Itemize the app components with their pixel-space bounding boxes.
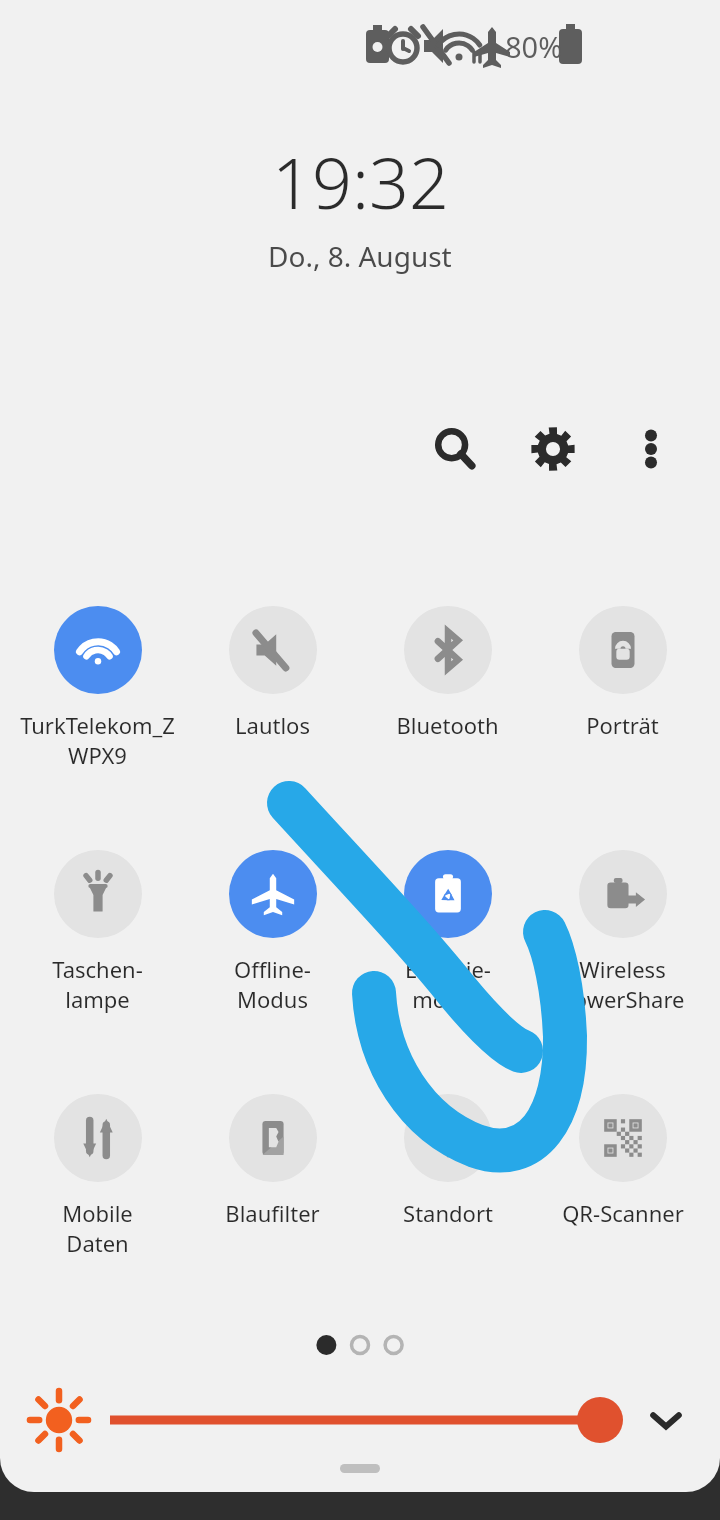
staticText: Do., 8. August	[268, 237, 452, 275]
button[interactable]: Mobile Daten	[10, 1094, 185, 1258]
staticText: TurkTelekom_Z WPX9	[20, 710, 175, 770]
button[interactable]: Standort	[360, 1094, 535, 1228]
staticText: Porträt	[586, 710, 659, 740]
button[interactable]: Wireless PowerShare	[535, 850, 710, 1014]
button[interactable]: Search	[418, 412, 492, 486]
staticText: Wireless PowerShare	[560, 954, 685, 1014]
staticText: Standort	[403, 1198, 493, 1228]
staticText: Blaufilter	[225, 1198, 320, 1228]
staticText: Offline- Modus	[234, 954, 311, 1014]
staticText: Lautlos	[235, 710, 310, 740]
staticText: 19:32	[272, 134, 449, 229]
button[interactable]: Lautlos	[185, 606, 360, 740]
button[interactable]: More options	[614, 412, 688, 486]
staticText: Mobile Daten	[62, 1198, 133, 1258]
button[interactable]: Bluetooth	[360, 606, 535, 740]
button[interactable]: TurkTelekom_Z WPX9	[10, 606, 185, 770]
button[interactable]: Brightness	[104, 1388, 626, 1452]
button[interactable]: Porträt	[535, 606, 710, 740]
staticText: Energie- modus	[405, 954, 491, 1014]
button[interactable]: Offline- Modus	[185, 850, 360, 1014]
button[interactable]: Blaufilter	[185, 1094, 360, 1228]
staticText: Bluetooth	[396, 710, 499, 740]
button[interactable]: Energie- modus	[360, 850, 535, 1014]
button[interactable]: QR-Scanner	[535, 1094, 710, 1228]
staticText: Taschen- lampe	[52, 954, 143, 1014]
button[interactable]: Taschen- lampe	[10, 850, 185, 1014]
button[interactable]: Settings	[516, 412, 590, 486]
staticText: QR-Scanner	[562, 1198, 684, 1228]
staticText: 80%	[505, 27, 563, 66]
button[interactable]: Expand brightness settings	[634, 1388, 698, 1452]
